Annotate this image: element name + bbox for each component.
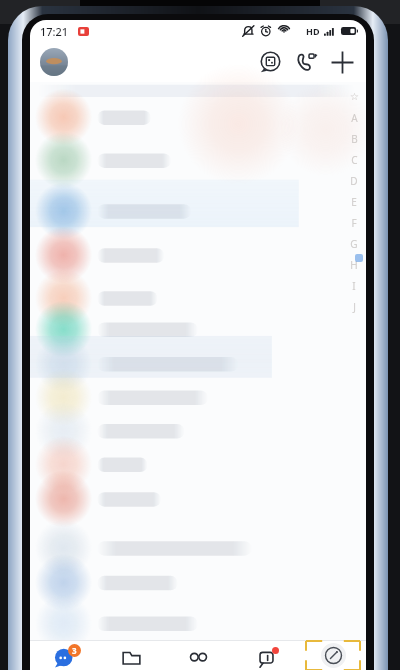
button[interactable]: ☆ (347, 86, 361, 107)
button[interactable]: A (347, 107, 361, 128)
staticText: 17:21 (40, 24, 69, 39)
button[interactable]: Discover (299, 640, 366, 670)
staticText: HD (306, 25, 320, 37)
staticText: D (350, 174, 358, 188)
staticText: G (350, 237, 358, 251)
staticText: H (350, 258, 358, 272)
staticText: B (351, 132, 358, 146)
button[interactable]: B (347, 128, 361, 149)
button[interactable]: G (347, 233, 361, 254)
button[interactable]: J (347, 296, 361, 317)
button[interactable]: Scan (252, 44, 288, 80)
button[interactable]: Contacts (165, 640, 232, 670)
button[interactable]: H (347, 254, 361, 275)
staticText: F (351, 216, 357, 230)
button[interactable]: F (347, 212, 361, 233)
button[interactable]: E (347, 191, 361, 212)
staticText: ☆ (350, 91, 359, 103)
button[interactable]: Profile (40, 48, 68, 76)
button[interactable]: D (347, 170, 361, 191)
staticText: A (351, 111, 358, 125)
button[interactable]: C (347, 149, 361, 170)
button[interactable]: I (347, 275, 361, 296)
button[interactable]: Video call (288, 44, 324, 80)
button[interactable]: Chats (30, 640, 98, 670)
button[interactable]: Messages (232, 640, 299, 670)
staticText: C (351, 153, 358, 167)
button[interactable]: Workspace (98, 640, 165, 670)
staticText: 3 (72, 645, 77, 656)
button[interactable]: Add (324, 44, 360, 80)
staticText: E (351, 195, 357, 209)
staticText: J (353, 300, 356, 314)
staticText: I (352, 279, 356, 293)
